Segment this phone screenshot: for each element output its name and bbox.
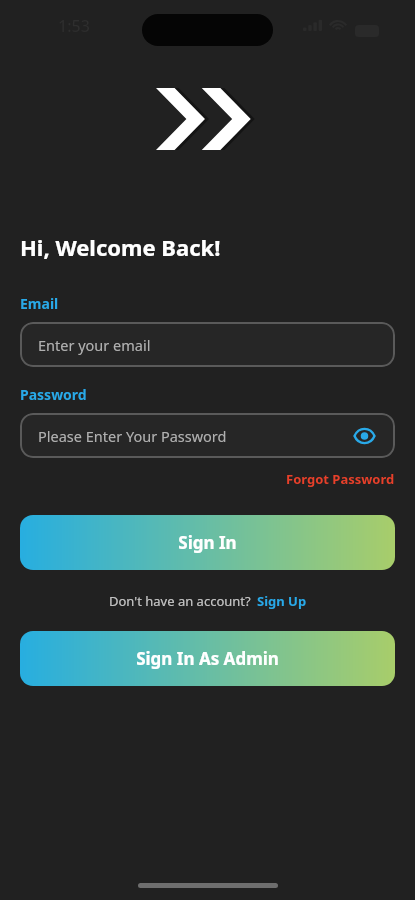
button[interactable]: Sign In As Admin bbox=[20, 631, 395, 686]
staticText: Forgot Password bbox=[286, 470, 395, 488]
staticText: Password bbox=[20, 385, 87, 404]
staticText: Sign In bbox=[178, 531, 237, 554]
staticText: Don't have an account? bbox=[109, 592, 251, 610]
staticText: Email bbox=[20, 294, 59, 313]
staticText: Sign Up bbox=[257, 592, 307, 610]
staticText: Please Enter Your Password bbox=[38, 426, 351, 446]
button[interactable]: Show password bbox=[351, 423, 377, 449]
button[interactable]: Sign In bbox=[20, 515, 395, 570]
staticText: Hi, Welcome Back! bbox=[20, 232, 221, 262]
button[interactable]: Please Enter Your Password bbox=[20, 413, 395, 458]
staticText: Sign In As Admin bbox=[136, 647, 279, 670]
button[interactable]: Sign Up bbox=[257, 592, 307, 610]
staticText: 1:53 bbox=[58, 15, 90, 37]
button[interactable]: Enter your email bbox=[20, 322, 395, 367]
staticText: Enter your email bbox=[38, 335, 377, 355]
button[interactable]: Forgot Password bbox=[286, 470, 395, 488]
